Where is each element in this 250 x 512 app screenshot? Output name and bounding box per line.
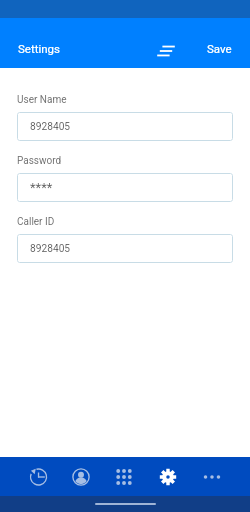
button[interactable]: More options (190, 457, 234, 496)
button[interactable]: Recents (16, 457, 59, 496)
staticText: **** (30, 180, 53, 195)
staticText: 8928405 (30, 243, 71, 255)
button[interactable]: Contacts (59, 457, 102, 496)
staticText: Save (207, 42, 232, 55)
button[interactable]: Save (189, 34, 250, 62)
button[interactable]: Sort (150, 38, 182, 64)
button[interactable]: Keypad (102, 457, 146, 496)
staticText: Password (17, 155, 62, 167)
staticText: Settings (18, 42, 60, 55)
button[interactable]: 8928405 (17, 234, 233, 263)
button[interactable]: 8928405 (17, 112, 233, 141)
staticText: User Name (17, 94, 67, 106)
staticText: Caller ID (17, 216, 55, 228)
button[interactable]: Settings (146, 457, 190, 496)
button[interactable]: **** (17, 173, 233, 202)
staticText: 8928405 (30, 121, 71, 133)
